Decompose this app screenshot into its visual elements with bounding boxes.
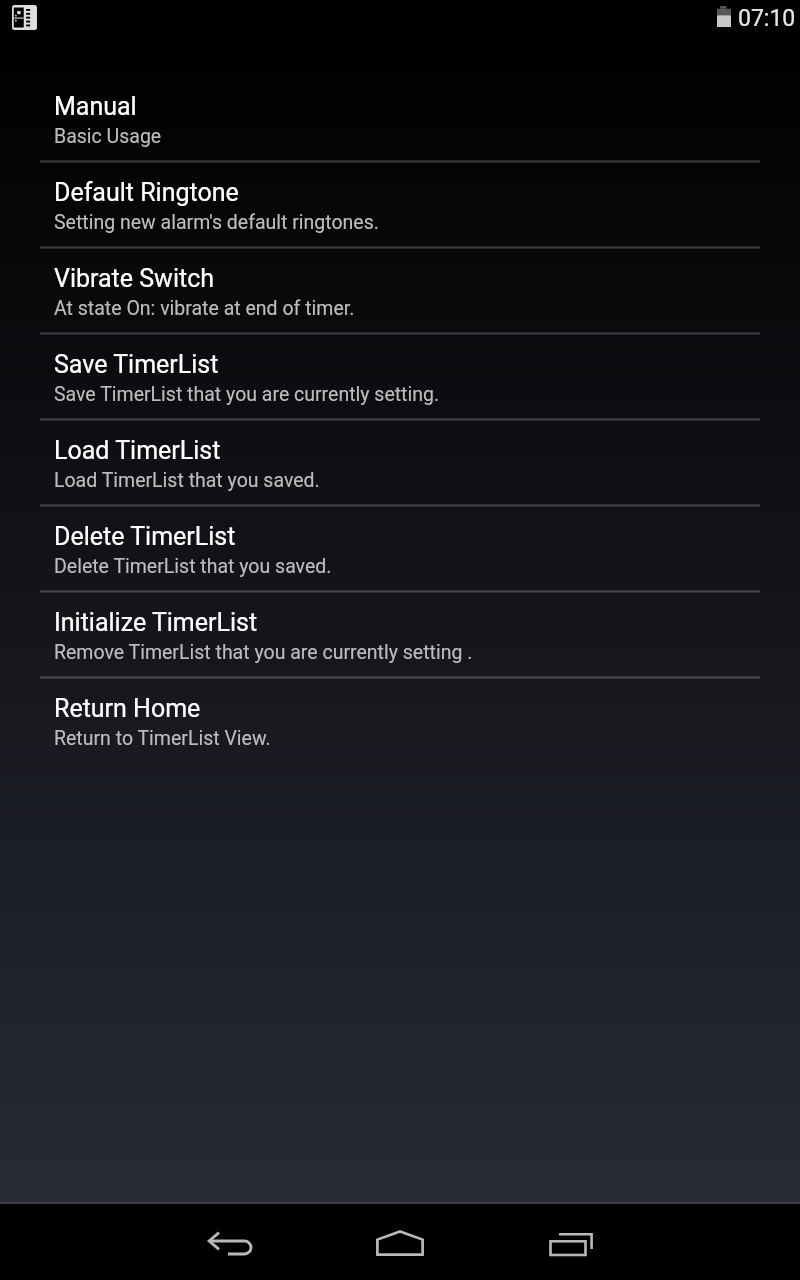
button[interactable]: Save TimerList <box>0 334 800 420</box>
button[interactable]: Home <box>344 1213 456 1273</box>
staticText: Basic Usage <box>54 125 162 148</box>
button[interactable]: Manual <box>0 76 800 162</box>
staticText: Setting new alarm's default ringtones. <box>54 211 379 234</box>
button[interactable]: Load TimerList <box>0 420 800 506</box>
staticText: At state On: vibrate at end of timer. <box>54 297 355 320</box>
staticText: Load TimerList <box>54 436 221 465</box>
button[interactable]: Delete TimerList <box>0 506 800 592</box>
staticText: 07:10 <box>738 5 796 32</box>
staticText: Vibrate Switch <box>54 264 214 293</box>
staticText: Save TimerList that you are currently se… <box>54 383 440 406</box>
staticText: Remove TimerList that you are currently … <box>54 641 473 664</box>
button[interactable]: Default Ringtone <box>0 162 800 248</box>
staticText: Return Home <box>54 694 201 723</box>
staticText: Delete TimerList <box>54 522 236 551</box>
button[interactable]: Recent apps <box>515 1214 627 1274</box>
staticText: Save TimerList <box>54 350 219 379</box>
staticText: Default Ringtone <box>54 178 239 207</box>
staticText: Manual <box>54 92 137 121</box>
staticText: Delete TimerList that you saved. <box>54 555 332 578</box>
button[interactable]: Initialize TimerList <box>0 592 800 678</box>
staticText: Load TimerList that you saved. <box>54 469 320 492</box>
button[interactable]: Back <box>174 1214 286 1274</box>
button[interactable]: Vibrate Switch <box>0 248 800 334</box>
button[interactable]: Return Home <box>0 678 800 764</box>
staticText: Initialize TimerList <box>54 608 258 637</box>
staticText: Return to TimerList View. <box>54 727 271 750</box>
